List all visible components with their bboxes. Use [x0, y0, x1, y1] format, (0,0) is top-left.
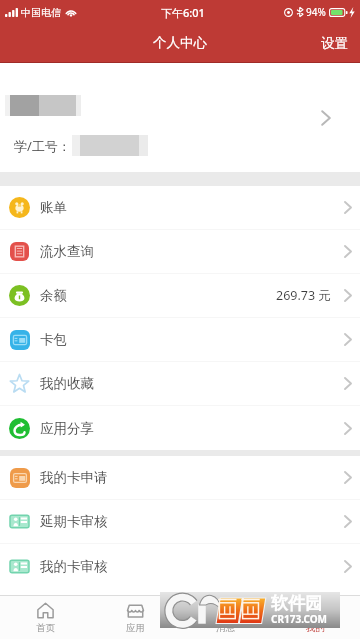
staticText: 下午6:01 — [161, 5, 205, 20]
staticText: 我的卡审核 — [40, 558, 108, 575]
staticText: 消息 — [216, 622, 235, 634]
staticText: 应用 — [126, 622, 145, 634]
button[interactable]: 我的收藏 — [0, 362, 360, 405]
staticText: 余额 — [40, 287, 67, 304]
button[interactable]: 设置 — [307, 24, 360, 63]
button[interactable]: 余额 — [0, 274, 360, 317]
button[interactable]: 卡包 — [0, 318, 360, 361]
button[interactable]: 学/工号： — [0, 63, 360, 172]
button[interactable]: 应用 — [90, 596, 180, 639]
staticText: 我的卡申请 — [40, 469, 108, 486]
staticText: 94% — [306, 5, 326, 19]
button[interactable]: 我的卡审核 — [0, 544, 360, 588]
staticText: 应用分享 — [40, 420, 94, 437]
button[interactable]: 流水查询 — [0, 230, 360, 273]
staticText: 设置 — [321, 35, 348, 52]
staticText: 269.73 元 — [276, 287, 331, 304]
button[interactable]: 我的卡申请 — [0, 456, 360, 499]
button[interactable]: 应用分享 — [0, 406, 360, 450]
button[interactable]: 消息 — [180, 596, 270, 639]
staticText: 流水查询 — [40, 243, 94, 260]
staticText: 我的 — [306, 622, 325, 634]
staticText: 我的收藏 — [40, 375, 94, 392]
staticText: 中国电信 — [21, 6, 61, 19]
button[interactable]: 延期卡审核 — [0, 500, 360, 543]
staticText: 首页 — [36, 622, 55, 634]
button[interactable]: 首页 — [0, 596, 90, 639]
button[interactable]: 账单 — [0, 186, 360, 229]
staticText: CR173.COM — [271, 612, 328, 626]
staticText: 卡包 — [40, 331, 67, 348]
staticText: 学/工号： — [14, 137, 71, 155]
staticText: 软件园 — [271, 593, 322, 614]
staticText: 个人中心 — [153, 34, 207, 51]
button[interactable]: 我的 — [270, 596, 360, 639]
staticText: 账单 — [40, 199, 67, 216]
staticText: 延期卡审核 — [40, 513, 108, 530]
